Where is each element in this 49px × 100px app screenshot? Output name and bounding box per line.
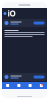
button[interactable] — [0, 19, 48, 27]
button[interactable]: Tab — [36, 82, 47, 89]
button[interactable]: Tab — [13, 82, 24, 89]
button[interactable]: Tab — [2, 82, 13, 89]
button[interactable] — [0, 73, 48, 81]
staticText: iO — [7, 8, 15, 19]
button[interactable]: Tab — [24, 82, 36, 89]
